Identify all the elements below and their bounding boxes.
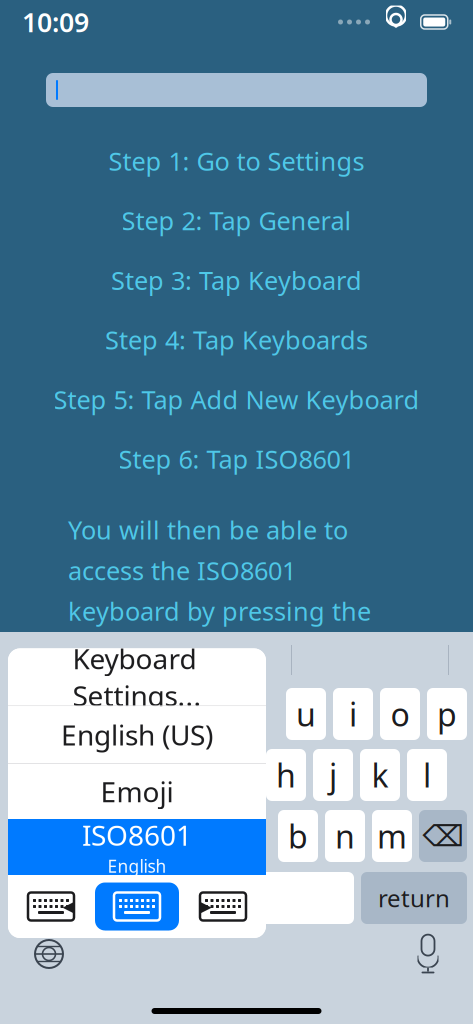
- staticText: ▶: [200, 898, 211, 915]
- button[interactable]: Emoji: [8, 764, 266, 819]
- button[interactable]: Next keyboard: [34, 939, 64, 969]
- button[interactable]: n: [325, 810, 365, 862]
- staticText: Step 5: Tap Add New Keyboard: [53, 383, 419, 416]
- staticText: return: [378, 882, 450, 914]
- button[interactable]: k: [360, 749, 400, 801]
- staticText: Emoji: [100, 773, 173, 810]
- staticText: o: [390, 693, 409, 735]
- button[interactable]: p: [427, 688, 467, 740]
- staticText: h: [276, 754, 296, 796]
- button[interactable]: English (US): [8, 706, 266, 763]
- staticText: u: [296, 693, 316, 735]
- button[interactable]: Delete: [419, 810, 467, 862]
- staticText: Step 1: Go to Settings: [108, 144, 364, 178]
- button[interactable]: i: [333, 688, 373, 740]
- staticText: ◀: [62, 898, 73, 915]
- button[interactable]: ISO8601: [8, 819, 266, 875]
- button[interactable]: o: [380, 688, 420, 740]
- staticText: ⌫: [422, 819, 463, 853]
- button[interactable]: u: [286, 688, 326, 740]
- staticText: Step 2: Tap General: [121, 204, 351, 237]
- button[interactable]: Split keyboard: [197, 890, 249, 922]
- button[interactable]: [46, 73, 427, 107]
- staticText: m: [377, 815, 407, 857]
- staticText: l: [423, 754, 431, 796]
- staticText: ISO8601: [82, 816, 192, 854]
- button[interactable]: b: [278, 810, 318, 862]
- staticText: b: [288, 815, 308, 857]
- staticText: Step 6: Tap ISO8601: [118, 442, 354, 476]
- staticText: You will then be able to access the ISO8…: [68, 513, 371, 709]
- staticText: k: [371, 754, 388, 796]
- button[interactable]: Undock keyboard: [25, 890, 77, 922]
- staticText: 10:09: [22, 4, 89, 40]
- button[interactable]: return: [361, 872, 467, 924]
- staticText: i: [349, 693, 357, 735]
- staticText: p: [437, 693, 457, 735]
- button[interactable]: j: [313, 749, 353, 801]
- staticText: n: [335, 815, 355, 857]
- button[interactable]: Dictation: [417, 938, 439, 970]
- staticText: English (US): [61, 716, 213, 753]
- button[interactable]: h: [266, 749, 306, 801]
- staticText: Step 3: Tap Keyboard: [111, 263, 362, 297]
- button[interactable]: m: [372, 810, 412, 862]
- staticText: j: [329, 754, 337, 796]
- staticText: Step 4: Tap Keyboards: [105, 323, 368, 356]
- button[interactable]: Keyboard Settings...: [8, 648, 266, 705]
- staticText: Keyboard Settings...: [72, 640, 201, 714]
- staticText: English: [107, 855, 166, 878]
- button[interactable]: Dock keyboard: [95, 882, 179, 930]
- button[interactable]: l: [407, 749, 447, 801]
